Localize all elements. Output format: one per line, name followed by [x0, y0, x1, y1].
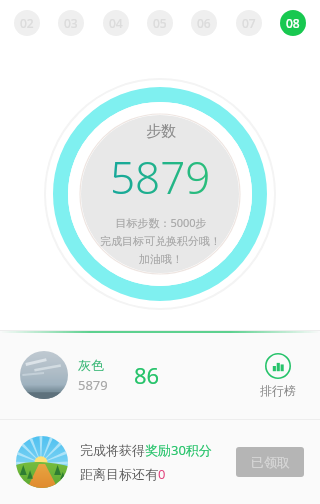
staticText: 已领取 [251, 454, 290, 470]
button[interactable]: 灰色 [20, 351, 108, 399]
button[interactable]: 07 [236, 10, 262, 36]
staticText: 完成目标可兑换积分哦！ [100, 234, 221, 248]
staticText: 08 [286, 15, 300, 31]
other: 排行榜 [265, 353, 291, 379]
staticText: 排行榜 [260, 383, 296, 398]
staticText: 灰色 [78, 357, 104, 373]
staticText: 距离目标还有0 [80, 465, 166, 483]
button[interactable]: 05 [147, 10, 173, 36]
button[interactable]: 02 [14, 10, 40, 36]
button[interactable]: 08 [280, 10, 306, 36]
staticText: 05 [153, 15, 167, 31]
staticText: 目标步数：5000步 [115, 215, 207, 230]
button[interactable]: 已领取 [236, 447, 304, 477]
button[interactable]: 03 [58, 10, 84, 36]
staticText: 步数 [146, 122, 176, 141]
staticText: 06 [197, 15, 211, 31]
staticText: 加油哦！ [139, 252, 183, 266]
staticText: 5879 [110, 147, 211, 207]
staticText: 07 [242, 15, 256, 31]
button[interactable]: 06 [191, 10, 217, 36]
staticText: 04 [109, 15, 123, 31]
staticText: 完成将获得奖励30积分 [80, 441, 212, 459]
staticText: 5879 [78, 376, 108, 394]
staticText: 03 [64, 15, 78, 31]
staticText: 86 [134, 360, 160, 390]
staticText: 02 [20, 15, 34, 31]
button[interactable]: 04 [103, 10, 129, 36]
button[interactable]: 排行榜 [256, 349, 300, 402]
